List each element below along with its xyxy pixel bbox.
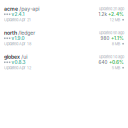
- staticText: globex: [4, 54, 20, 60]
- staticText: acme: [4, 6, 18, 12]
- staticText: /ui: [21, 54, 27, 60]
- staticText: 1.2k: [98, 12, 106, 17]
- staticText: v1.9.0: [11, 35, 24, 41]
- staticText: 640: [98, 60, 107, 65]
- staticText: 12 MB: [110, 17, 121, 22]
- staticText: updated 5h ago: [99, 30, 124, 35]
- staticText: updated 2h ago: [99, 6, 124, 11]
- staticText: 8 MB: [112, 41, 121, 46]
- staticText: +2.4%: [108, 11, 124, 17]
- button[interactable]: acme: [0, 3, 128, 27]
- staticText: v0.8.3: [11, 59, 25, 65]
- staticText: /pay-api: [19, 6, 39, 12]
- staticText: +1.1%: [111, 35, 124, 41]
- staticText: Updated Apr 12: [4, 65, 31, 70]
- staticText: 5 MB: [112, 65, 121, 70]
- staticText: /ledger: [18, 30, 35, 36]
- staticText: 980: [100, 36, 109, 41]
- button[interactable]: north: [0, 27, 128, 51]
- staticText: Updated Apr 18: [4, 41, 31, 46]
- staticText: Updated Apr 21: [4, 17, 31, 22]
- staticText: north: [4, 30, 17, 36]
- staticText: +0.6%: [109, 59, 124, 65]
- button[interactable]: globex: [0, 51, 128, 75]
- staticText: v2.4.1: [11, 11, 24, 17]
- staticText: updated 1d ago: [99, 54, 124, 59]
